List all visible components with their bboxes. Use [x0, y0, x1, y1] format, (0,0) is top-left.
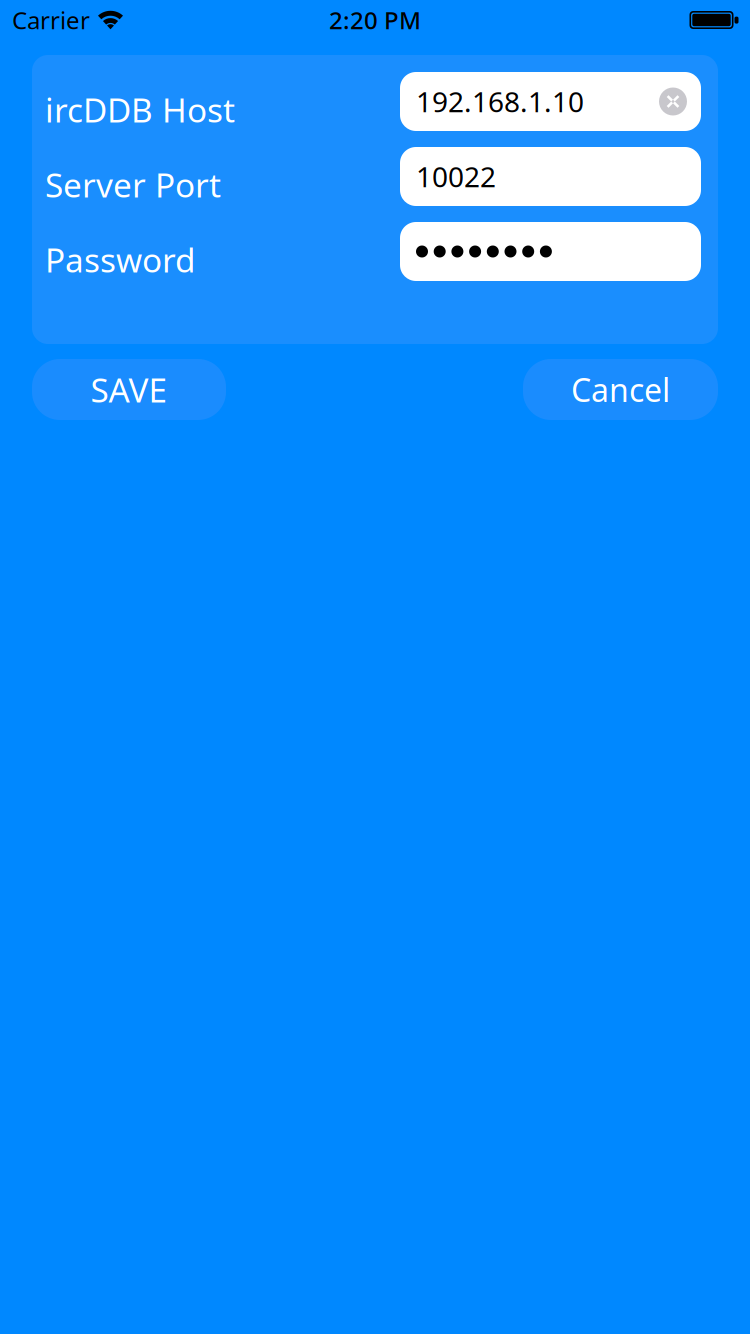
- button[interactable]: Clear text: [659, 87, 687, 115]
- staticText: 2:20 PM: [329, 4, 421, 36]
- staticText: 192.168.1.10: [416, 83, 584, 120]
- staticText: Server Port: [45, 162, 221, 207]
- staticText: SAVE: [90, 367, 167, 412]
- button[interactable]: [400, 222, 701, 281]
- button[interactable]: 10022: [400, 147, 701, 206]
- staticText: Carrier: [12, 4, 90, 36]
- button[interactable]: 192.168.1.10: [400, 72, 701, 131]
- button[interactable]: SAVE: [32, 359, 226, 420]
- staticText: ircDDB Host: [45, 87, 235, 132]
- staticText: Cancel: [571, 368, 670, 411]
- staticText: Password: [45, 237, 196, 282]
- button[interactable]: Cancel: [523, 359, 718, 420]
- staticText: 10022: [416, 158, 496, 195]
